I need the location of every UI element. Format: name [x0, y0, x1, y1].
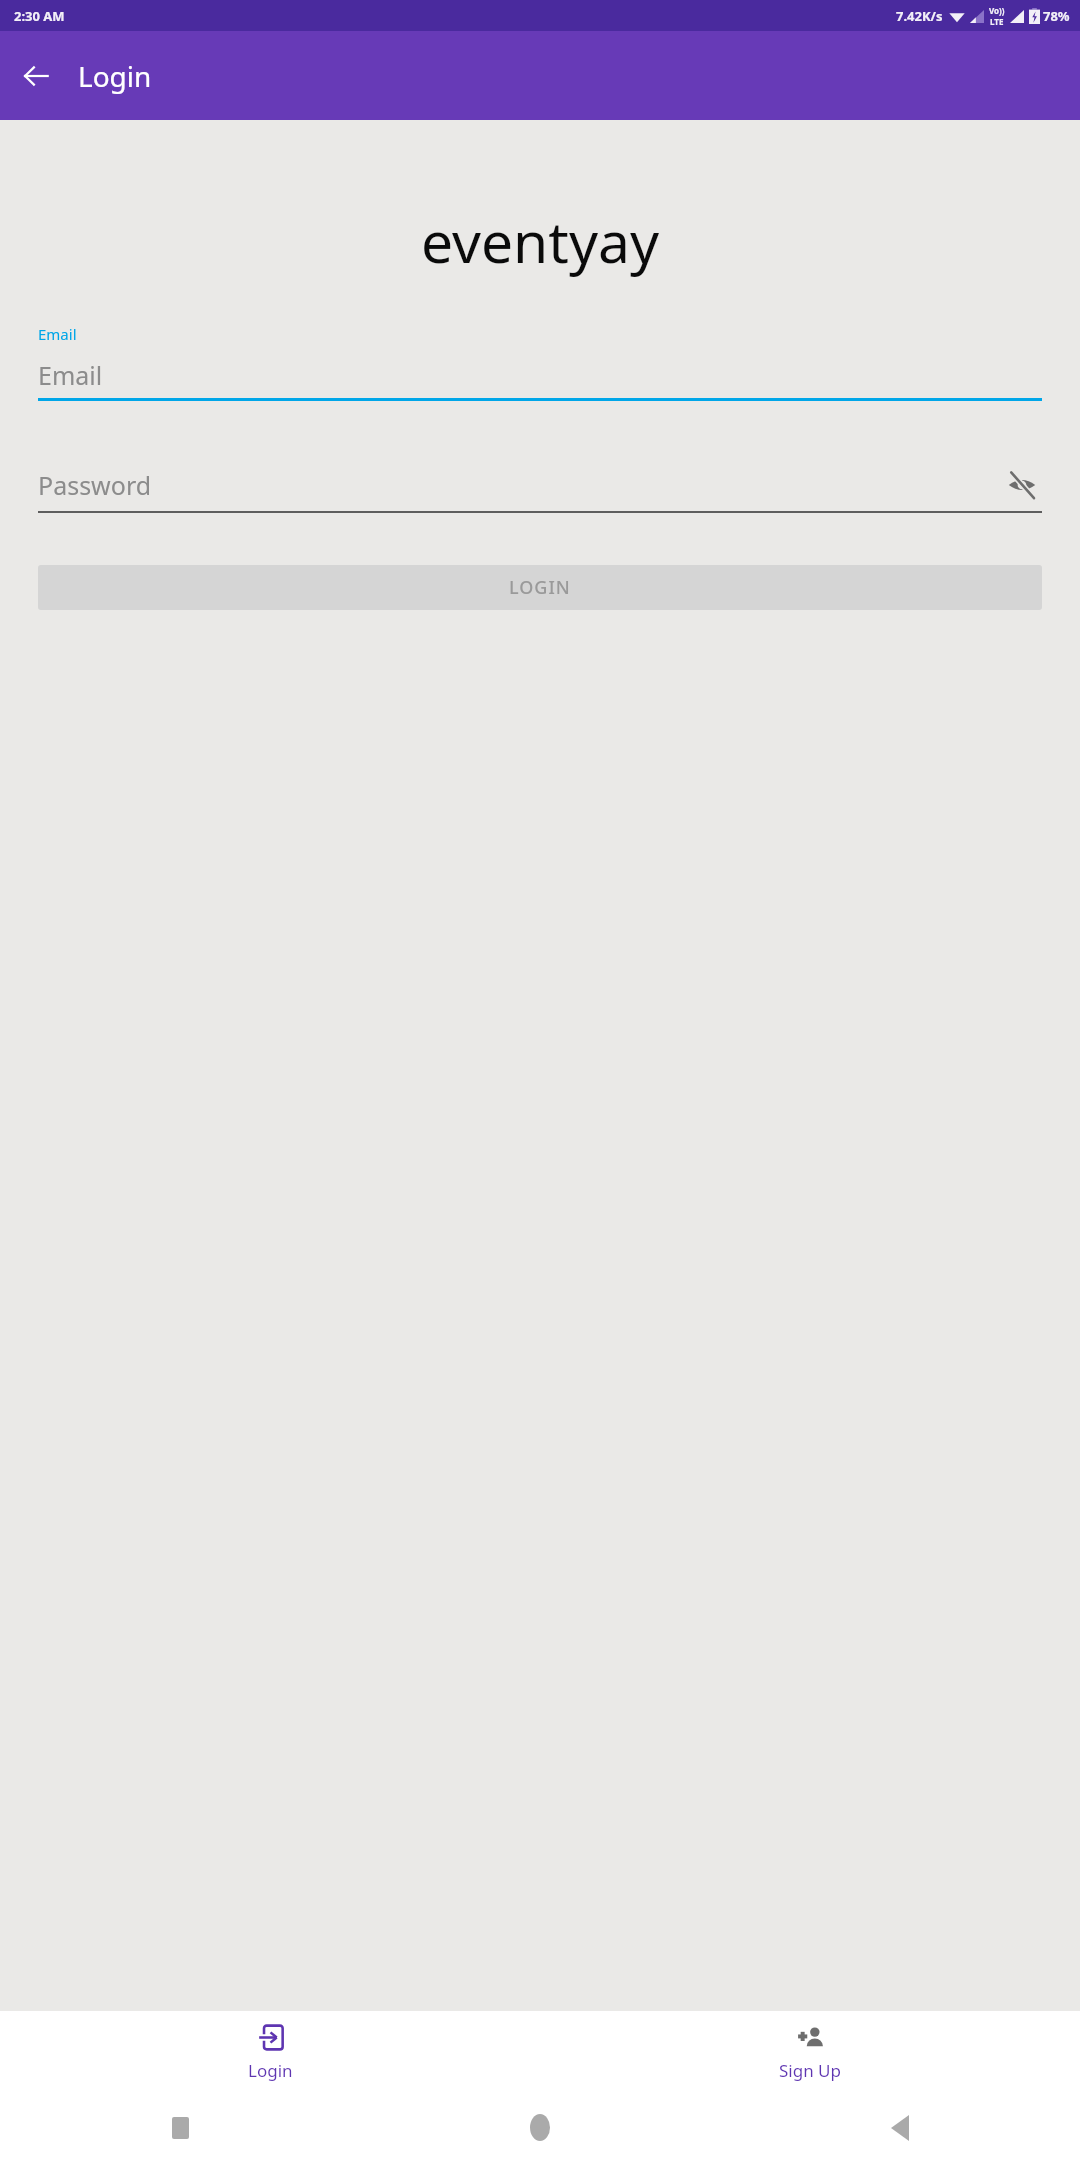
staticText: LTE — [990, 16, 1004, 27]
staticText: Password — [38, 468, 152, 502]
button[interactable]: LOGIN — [38, 565, 1042, 610]
staticText: eventyay — [0, 202, 1080, 280]
staticText: Email — [38, 358, 103, 392]
staticText: Login — [248, 2059, 293, 2082]
staticText: 78% — [1043, 7, 1070, 25]
staticText: Email — [38, 324, 77, 344]
button[interactable]: Show password — [1002, 465, 1042, 505]
button[interactable]: Password — [38, 463, 1042, 507]
staticText: LOGIN — [509, 575, 571, 600]
staticText: Vo)) — [989, 5, 1005, 16]
staticText: 2:30 AM — [14, 7, 65, 25]
staticText: Login — [78, 57, 152, 95]
button[interactable]: Back — [720, 2095, 1080, 2160]
button[interactable]: Login — [0, 2011, 540, 2095]
staticText: Sign Up — [779, 2059, 841, 2082]
button[interactable]: Email — [38, 356, 1042, 394]
button[interactable]: Sign Up — [540, 2011, 1080, 2095]
staticText: 7.42K/s — [896, 7, 943, 25]
button[interactable]: Back — [8, 48, 64, 104]
button[interactable]: Home — [360, 2095, 720, 2160]
button[interactable]: Recent apps — [0, 2095, 360, 2160]
